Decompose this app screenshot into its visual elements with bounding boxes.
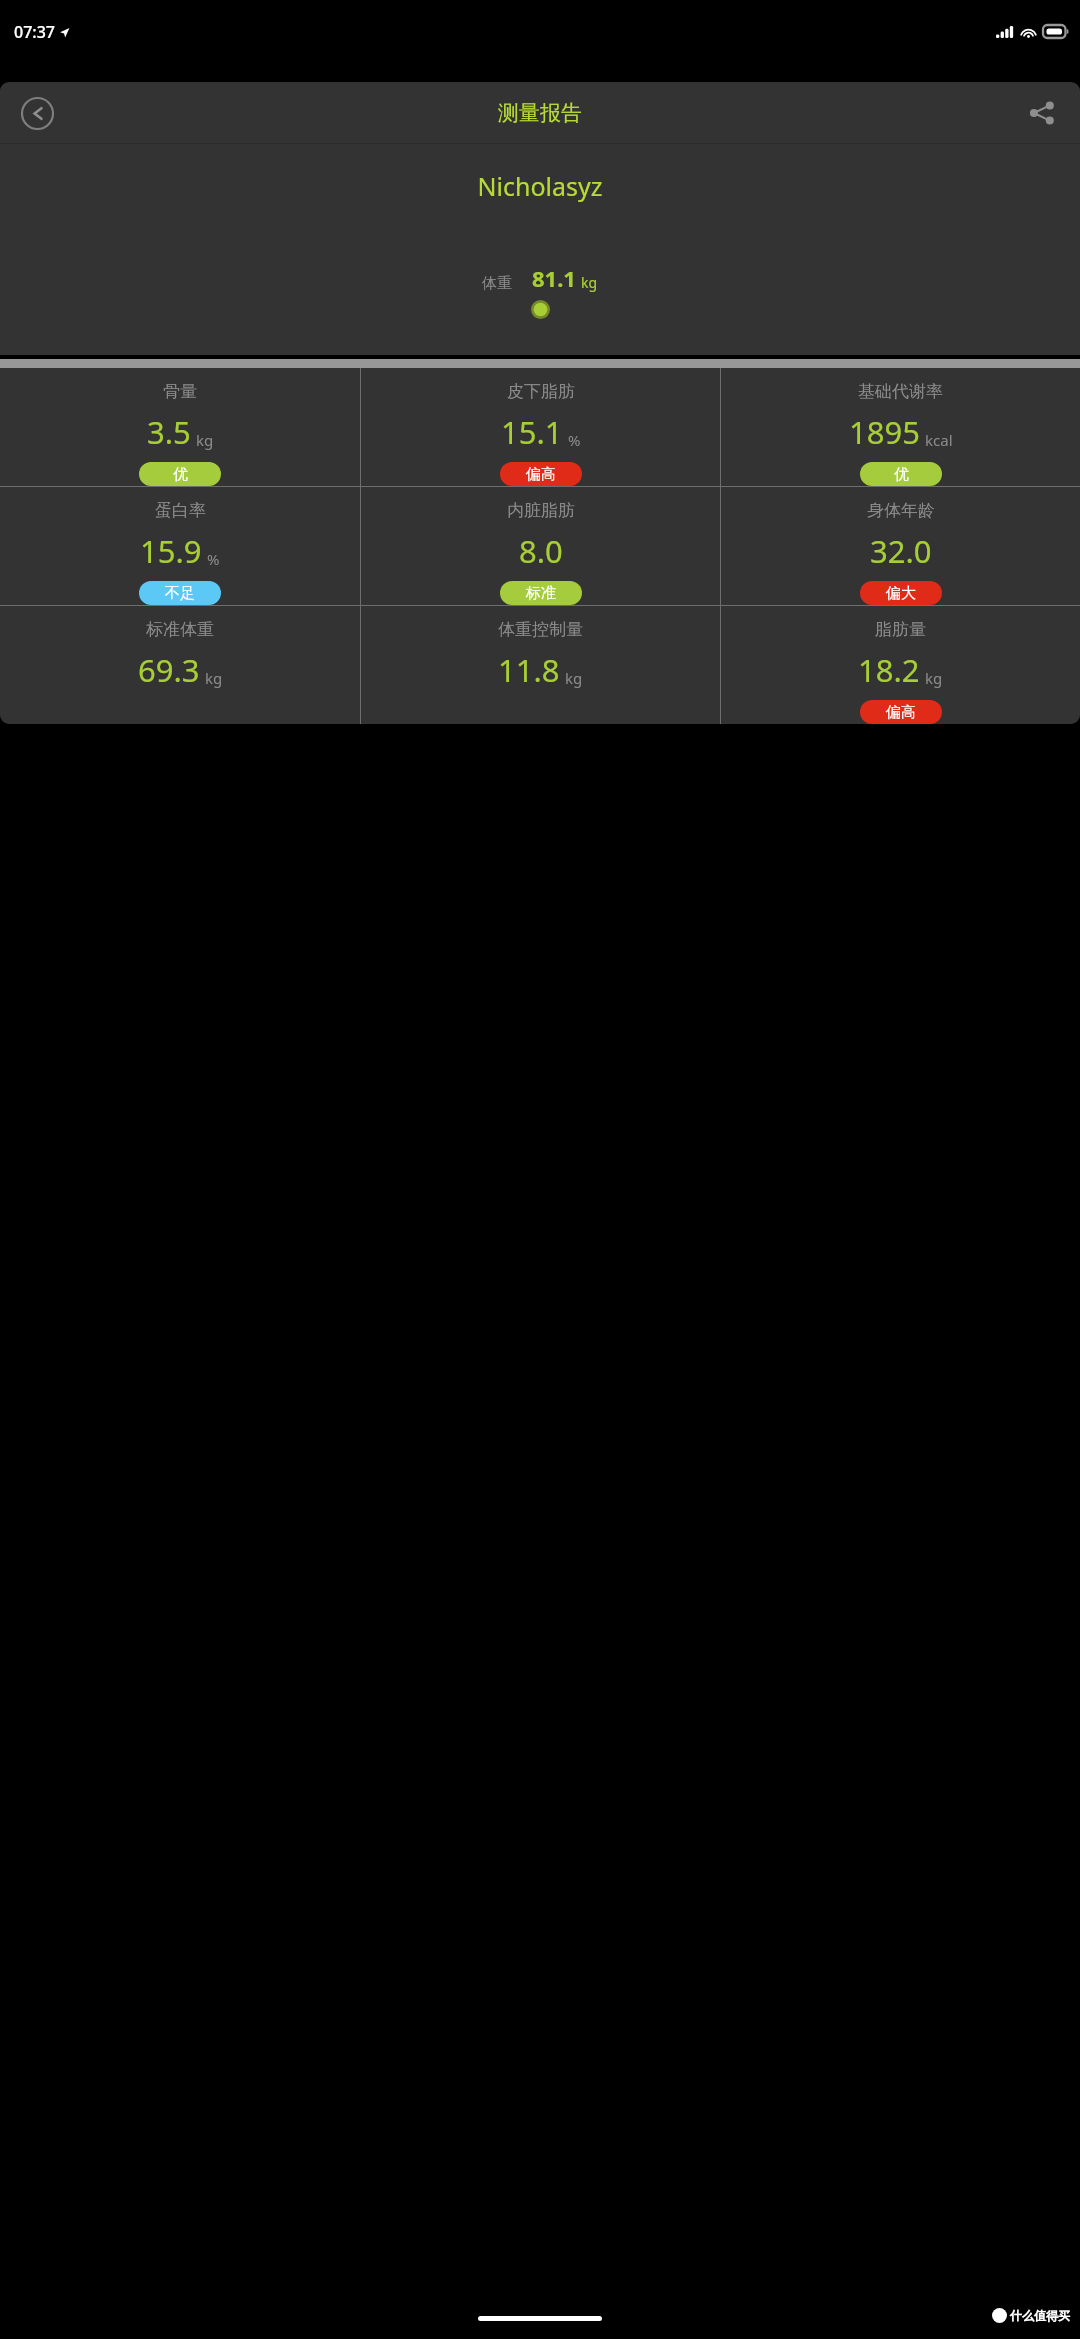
staticText: 体重: [482, 274, 512, 293]
staticText: 优: [173, 465, 188, 484]
staticText: 蛋白率: [155, 500, 206, 521]
button[interactable]: 标准: [500, 581, 582, 605]
staticText: 81.1: [532, 263, 576, 293]
staticText: 偏高: [526, 465, 556, 484]
staticText: kg: [925, 668, 943, 688]
staticText: Nicholasyz: [0, 169, 1080, 203]
button[interactable]: 基础代谢率: [721, 368, 1080, 486]
button[interactable]: 偏高: [860, 700, 942, 724]
staticText: 3.5: [147, 411, 191, 453]
staticText: %: [207, 549, 220, 569]
staticText: 偏高: [886, 703, 916, 722]
staticText: kg: [196, 430, 214, 450]
staticText: 1895: [849, 411, 920, 453]
staticText: 11.8: [498, 649, 560, 691]
staticText: 8.0: [519, 530, 563, 572]
button[interactable]: 皮下脂肪: [361, 368, 720, 486]
staticText: 偏大: [886, 584, 916, 603]
button[interactable]: 骨量: [0, 368, 360, 486]
button[interactable]: 内脏脂肪: [361, 487, 720, 605]
staticText: 脂肪量: [875, 619, 926, 640]
button[interactable]: 标准体重: [0, 606, 360, 724]
staticText: 测量报告: [498, 100, 582, 126]
staticText: 体重控制量: [498, 619, 583, 640]
staticText: 什么值得买: [1010, 2308, 1070, 2323]
staticText: 标准体重: [146, 619, 214, 640]
button[interactable]: 偏大: [860, 581, 942, 605]
staticText: kcal: [925, 430, 953, 450]
button[interactable]: 偏高: [500, 462, 582, 486]
staticText: 皮下脂肪: [507, 381, 575, 402]
staticText: 15.1: [501, 411, 563, 453]
staticText: 18.2: [858, 649, 920, 691]
staticText: 不足: [165, 584, 195, 603]
staticText: kg: [205, 668, 223, 688]
staticText: 身体年龄: [867, 500, 935, 521]
staticText: 标准: [526, 584, 556, 603]
staticText: kg: [581, 273, 598, 292]
button[interactable]: 体重控制量: [361, 606, 720, 724]
button[interactable]: 蛋白率: [0, 487, 360, 605]
staticText: %: [568, 430, 581, 450]
staticText: 07:37: [14, 21, 55, 43]
button[interactable]: 优: [139, 462, 221, 486]
staticText: 15.9: [140, 530, 202, 572]
staticText: 内脏脂肪: [507, 500, 575, 521]
button[interactable]: Back: [18, 94, 56, 132]
staticText: 69.3: [138, 649, 200, 691]
button[interactable]: Share: [1022, 93, 1062, 133]
button[interactable]: 优: [860, 462, 942, 486]
staticText: 骨量: [163, 381, 197, 402]
staticText: 基础代谢率: [858, 381, 943, 402]
staticText: 32.0: [870, 530, 932, 572]
button[interactable]: 身体年龄: [721, 487, 1080, 605]
button[interactable]: 不足: [139, 581, 221, 605]
staticText: 优: [894, 465, 909, 484]
button[interactable]: 脂肪量: [721, 606, 1080, 724]
staticText: kg: [565, 668, 583, 688]
